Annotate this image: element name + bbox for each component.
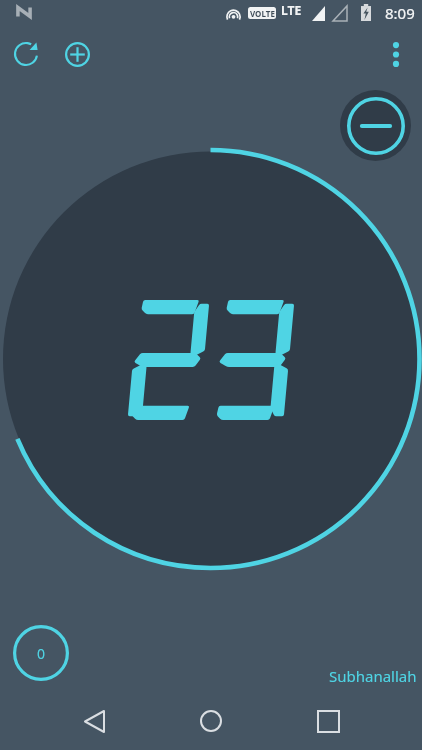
staticText: VOLTE xyxy=(250,8,275,19)
staticText: Subhanallah xyxy=(329,666,417,686)
button[interactable]: Recent apps xyxy=(292,690,364,750)
button[interactable]: Decrease count xyxy=(340,90,411,161)
button[interactable]: Reset counter xyxy=(4,32,48,76)
staticText: 8:09 xyxy=(385,3,415,23)
button[interactable]: Rounds completed xyxy=(12,624,70,682)
button[interactable]: Home xyxy=(175,690,247,750)
button[interactable]: Tap to count xyxy=(0,0,422,750)
staticText: LTE xyxy=(281,2,302,18)
button[interactable]: More options xyxy=(372,30,420,78)
button[interactable]: Back xyxy=(58,690,130,750)
button[interactable]: Add xyxy=(55,32,99,76)
staticText: 0 xyxy=(37,644,46,663)
